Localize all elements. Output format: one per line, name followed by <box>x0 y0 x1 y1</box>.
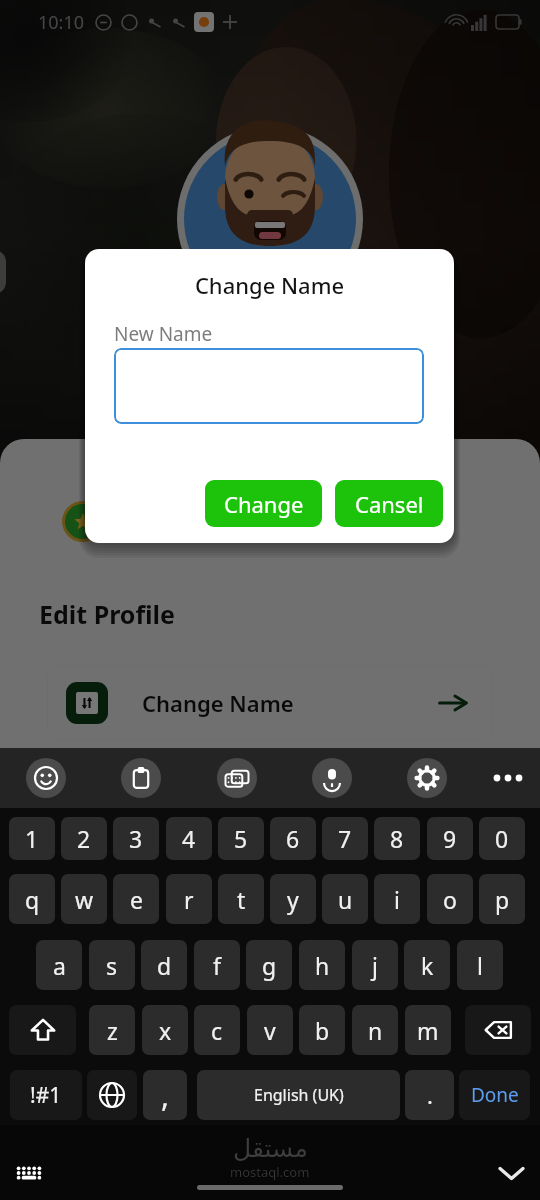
staticText: a <box>53 950 66 981</box>
staticText: Change Name <box>85 270 454 300</box>
button[interactable]: 9 <box>427 817 473 860</box>
staticText: m <box>417 1015 439 1046</box>
staticText: , <box>161 1075 170 1116</box>
button[interactable]: e <box>113 874 159 924</box>
button[interactable]: Change <box>205 480 322 527</box>
staticText: c <box>211 1015 223 1046</box>
button[interactable]: Done <box>459 1070 530 1120</box>
button[interactable]: Backspace <box>465 1005 531 1055</box>
staticText: Change <box>224 489 304 519</box>
staticText: 4 <box>182 823 196 854</box>
staticText: f <box>213 950 221 981</box>
staticText: v <box>264 1015 276 1046</box>
button[interactable]: o <box>427 874 473 924</box>
button[interactable]: 0 <box>479 817 525 860</box>
button[interactable]: f <box>194 940 240 990</box>
button[interactable]: Change Name <box>47 665 493 740</box>
button[interactable]: w <box>61 874 107 924</box>
button[interactable]: m <box>405 1005 451 1055</box>
staticText: q <box>25 884 40 915</box>
button[interactable]: . <box>405 1070 454 1120</box>
button[interactable]: t <box>218 874 264 924</box>
staticText: Done <box>471 1082 519 1108</box>
button[interactable]: x <box>142 1005 188 1055</box>
button[interactable]: Cansel <box>335 480 443 527</box>
button[interactable]: !#1 <box>10 1070 82 1120</box>
staticText: k <box>421 950 434 981</box>
button[interactable]: Shift <box>9 1005 76 1055</box>
button[interactable]: More options <box>488 748 528 808</box>
button[interactable]: 7 <box>322 817 368 860</box>
button[interactable]: 6 <box>270 817 316 860</box>
staticText: u <box>338 884 353 915</box>
button[interactable]: d <box>141 940 187 990</box>
button[interactable] <box>114 348 424 424</box>
staticText: n <box>368 1015 383 1046</box>
staticText: j <box>372 950 378 981</box>
staticText: 2 <box>77 823 91 854</box>
staticText: x <box>159 1015 172 1046</box>
button[interactable]: p <box>479 874 525 924</box>
button[interactable]: Clipboard <box>121 758 161 798</box>
staticText: o <box>443 884 457 915</box>
staticText: r <box>184 884 194 915</box>
staticText: 10:10 <box>38 10 85 35</box>
staticText: Cansel <box>355 489 424 519</box>
button[interactable]: 4 <box>166 817 212 860</box>
button[interactable]: v <box>247 1005 293 1055</box>
button[interactable]: u <box>322 874 368 924</box>
button[interactable]: Keyboard modes <box>217 758 257 798</box>
staticText: y <box>287 884 299 915</box>
staticText: z <box>107 1015 118 1046</box>
button[interactable]: j <box>352 940 398 990</box>
button[interactable]: Back <box>0 250 6 294</box>
staticText: 3 <box>129 823 143 854</box>
staticText: b <box>315 1015 330 1046</box>
button[interactable]: g <box>246 940 292 990</box>
staticText: p <box>495 884 510 915</box>
button[interactable]: r <box>166 874 212 924</box>
staticText: New Name <box>114 321 213 347</box>
staticText: d <box>157 950 172 981</box>
button[interactable]: s <box>89 940 135 990</box>
button[interactable]: 1 <box>9 817 55 860</box>
button[interactable]: y <box>270 874 316 924</box>
staticText: 5 <box>234 823 248 854</box>
button[interactable]: a <box>36 940 82 990</box>
staticText: l <box>477 950 483 981</box>
staticText: مستقل <box>233 1134 308 1163</box>
button[interactable]: l <box>457 940 503 990</box>
button[interactable]: 5 <box>218 817 264 860</box>
button[interactable]: , <box>143 1070 187 1120</box>
button[interactable]: c <box>194 1005 240 1055</box>
button[interactable]: 3 <box>113 817 159 860</box>
button[interactable]: q <box>9 874 55 924</box>
button[interactable]: Settings <box>407 758 447 798</box>
button[interactable]: English (UK) <box>197 1070 400 1120</box>
staticText: 0 <box>495 823 509 854</box>
staticText: t <box>237 884 246 915</box>
button[interactable]: i <box>374 874 420 924</box>
button[interactable]: h <box>299 940 345 990</box>
staticText: h <box>315 950 330 981</box>
staticText: 7 <box>338 823 352 854</box>
button[interactable]: n <box>352 1005 398 1055</box>
button[interactable]: Hide keyboard <box>487 1148 536 1197</box>
staticText: mostaql.com <box>230 1163 310 1181</box>
staticText: e <box>130 884 143 915</box>
staticText: 6 <box>286 823 300 854</box>
button[interactable]: Language <box>87 1070 137 1120</box>
button[interactable]: k <box>404 940 450 990</box>
button[interactable]: Emoji <box>26 758 66 798</box>
staticText: 9 <box>443 823 457 854</box>
button[interactable]: z <box>89 1005 135 1055</box>
button[interactable]: 2 <box>61 817 107 860</box>
staticText: i <box>394 884 400 915</box>
staticText: 8 <box>390 823 404 854</box>
button[interactable]: Voice input <box>312 758 352 798</box>
staticText: w <box>75 884 94 915</box>
button[interactable]: b <box>299 1005 345 1055</box>
button[interactable]: Change keyboard <box>4 1148 53 1197</box>
button[interactable]: 8 <box>374 817 420 860</box>
staticText: . <box>427 1080 433 1110</box>
